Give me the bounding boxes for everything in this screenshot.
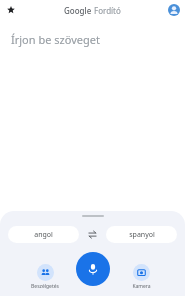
button[interactable]: Swap languages	[79, 225, 106, 243]
button[interactable]: Saved	[4, 3, 18, 17]
staticText: Fordító	[94, 5, 121, 16]
staticText: Kamera	[132, 283, 151, 290]
button[interactable]: Account	[168, 4, 180, 16]
staticText: spanyol	[129, 230, 155, 240]
button[interactable]: Írjon be szöveget	[11, 32, 100, 47]
staticText: angol	[34, 230, 53, 240]
button[interactable]: Camera	[120, 264, 162, 290]
button[interactable]: Microphone	[76, 252, 110, 286]
button[interactable]: Conversation	[24, 264, 66, 290]
button[interactable]: spanyol	[106, 226, 177, 243]
button[interactable]: angol	[8, 226, 79, 243]
staticText: Google	[64, 5, 92, 16]
staticText: Beszélgetés	[31, 283, 59, 290]
